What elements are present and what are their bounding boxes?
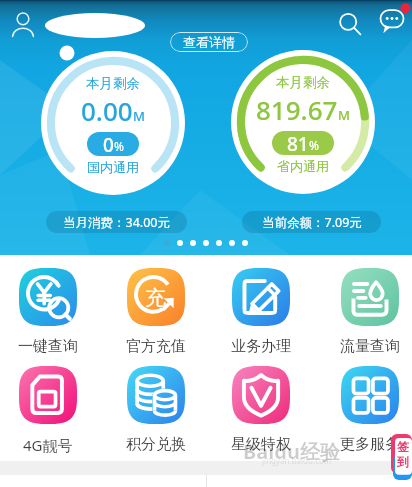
button[interactable]: 查看详情 bbox=[170, 32, 248, 52]
staticText: 业务办理 bbox=[231, 337, 291, 356]
button[interactable]: 星级特权 bbox=[209, 366, 312, 454]
staticText: Baidu经验 bbox=[243, 438, 340, 465]
staticText: M bbox=[338, 106, 350, 124]
button[interactable]: 更多服务 bbox=[318, 366, 412, 454]
staticText: % bbox=[309, 137, 319, 153]
button[interactable]: 充 bbox=[104, 268, 207, 356]
button[interactable]: 积分兑换 bbox=[104, 366, 207, 454]
staticText: M bbox=[133, 107, 145, 125]
staticText: 当前余额：7.09元 bbox=[262, 214, 362, 231]
staticText: 0 bbox=[103, 132, 114, 156]
staticText: 积分兑换 bbox=[126, 435, 186, 454]
button[interactable]: 流量查询 bbox=[318, 268, 412, 356]
button[interactable]: 4G靓号 bbox=[0, 366, 99, 455]
button[interactable]: Messages bbox=[373, 2, 411, 40]
staticText: % bbox=[114, 138, 124, 154]
button[interactable]: 当前余额：7.09元 bbox=[242, 211, 381, 233]
staticText: 流量查询 bbox=[340, 337, 400, 356]
staticText: 签 bbox=[397, 439, 409, 454]
staticText: 查看详情 bbox=[183, 34, 235, 50]
staticText: jingyan.baidu.com bbox=[262, 455, 332, 466]
button[interactable]: 当月消费：34.00元 bbox=[46, 211, 187, 233]
staticText: 国内通用 bbox=[87, 159, 139, 175]
button[interactable]: Search bbox=[331, 5, 369, 43]
staticText: 更多服务 bbox=[340, 435, 400, 454]
staticText: 本月剩余 bbox=[276, 74, 330, 91]
staticText: 0.00 bbox=[81, 93, 133, 128]
staticText: 星级特权 bbox=[231, 435, 291, 454]
staticText: 4G靓号 bbox=[23, 435, 73, 455]
button[interactable]: 业务办理 bbox=[209, 268, 312, 356]
staticText: 官方充值 bbox=[126, 337, 186, 356]
staticText: 819.67 bbox=[256, 92, 338, 127]
staticText: 81 bbox=[287, 131, 309, 155]
staticText: 充 bbox=[145, 285, 166, 311]
button[interactable]: Profile bbox=[6, 7, 40, 41]
button[interactable]: 一键查询 bbox=[0, 268, 99, 356]
staticText: 当月消费：34.00元 bbox=[63, 214, 170, 231]
staticText: 省内通用 bbox=[277, 158, 329, 174]
staticText: 本月剩余 bbox=[86, 75, 140, 92]
staticText: 到 bbox=[397, 454, 409, 469]
staticText: 一键查询 bbox=[18, 337, 78, 356]
